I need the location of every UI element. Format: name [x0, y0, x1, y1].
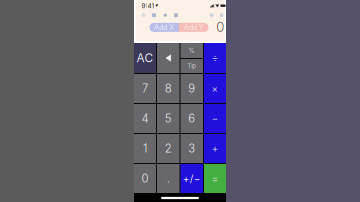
button[interactable]: + — [204, 134, 226, 163]
staticText: Add Y — [184, 23, 204, 32]
staticText: 4 — [141, 112, 148, 125]
button[interactable]: 9 — [180, 74, 203, 103]
staticText: 0 — [141, 172, 148, 185]
button[interactable]: Tip — [180, 59, 203, 73]
staticText: 9 — [188, 82, 195, 95]
button[interactable]: 4 — [134, 104, 156, 133]
button[interactable]: Percent — [180, 43, 203, 58]
button[interactable]: 2 — [157, 134, 179, 163]
button[interactable]: = — [204, 164, 226, 193]
button[interactable]: 6 — [180, 104, 203, 133]
staticText: 3 — [188, 142, 195, 155]
button[interactable]: 5 — [157, 104, 179, 133]
button[interactable]: × — [204, 74, 226, 103]
button[interactable]: 7 — [134, 74, 156, 103]
staticText: 7 — [142, 82, 148, 95]
button[interactable]: Back — [207, 11, 215, 19]
staticText: 1 — [143, 142, 147, 155]
button[interactable]: Reader — [139, 11, 147, 19]
button[interactable]: . — [157, 164, 179, 193]
button[interactable]: ÷ — [204, 43, 226, 73]
staticText: 5 — [165, 112, 172, 125]
staticText: × — [211, 82, 218, 95]
button[interactable]: 0 — [134, 164, 156, 193]
staticText: Add X — [154, 23, 174, 32]
staticText: 0 — [216, 19, 224, 35]
button[interactable]: 3 — [180, 134, 203, 163]
staticText: 8 — [165, 82, 172, 95]
button[interactable]: − — [204, 104, 226, 133]
staticText: +/− — [183, 172, 201, 185]
staticText: % — [189, 47, 195, 54]
button[interactable]: Delete — [157, 43, 179, 73]
staticText: 6 — [188, 112, 195, 125]
staticText: . — [167, 172, 170, 185]
button[interactable]: Tabs — [150, 11, 158, 19]
button[interactable]: 1 — [134, 134, 156, 163]
button[interactable]: Add X — [149, 23, 179, 32]
staticText: Tip — [187, 62, 196, 70]
button[interactable]: +/− — [180, 164, 203, 193]
staticText: AC — [136, 51, 153, 65]
staticText: + — [211, 142, 218, 155]
button[interactable]: AC — [134, 43, 156, 73]
staticText: ÷ — [211, 51, 218, 64]
button[interactable]: Bookmarks — [161, 11, 169, 19]
staticText: = — [211, 172, 218, 185]
button[interactable]: Forward — [217, 11, 225, 19]
staticText: − — [211, 112, 218, 125]
button[interactable]: Share — [172, 11, 180, 19]
button[interactable]: Add Y — [179, 23, 208, 32]
staticText: 2 — [165, 142, 172, 155]
button[interactable]: 8 — [157, 74, 179, 103]
staticText: 9:41 — [141, 2, 154, 10]
